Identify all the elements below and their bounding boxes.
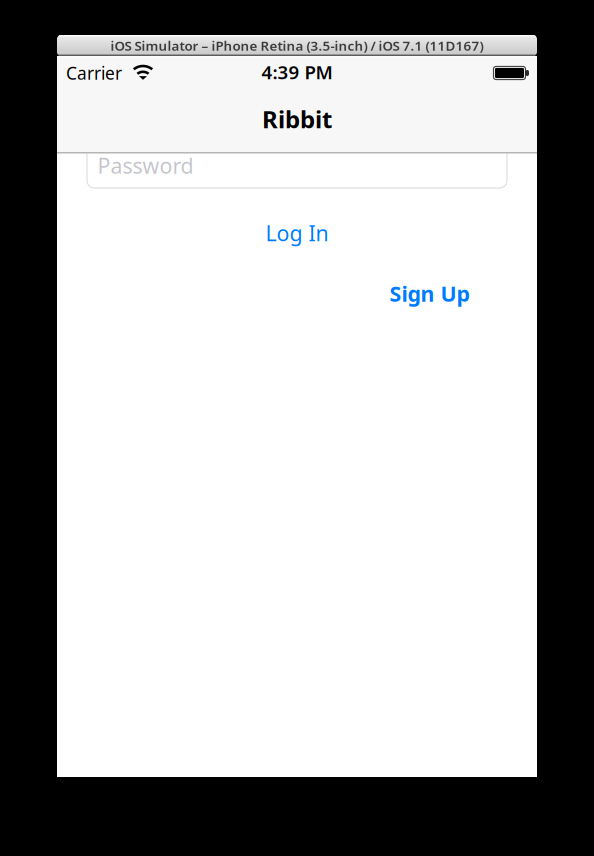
staticText: Password — [97, 151, 193, 180]
button[interactable]: Log In — [244, 210, 349, 255]
staticText: Sign Up — [390, 279, 470, 308]
staticText: Carrier — [66, 61, 122, 84]
staticText: iOS Simulator – iPhone Retina (3.5-inch)… — [110, 37, 483, 54]
button[interactable]: Password — [87, 143, 507, 188]
staticText: Ribbit — [262, 103, 332, 135]
staticText: Log In — [265, 219, 328, 247]
staticText: 4:39 PM — [261, 60, 332, 84]
button[interactable]: Sign Up — [383, 271, 476, 316]
